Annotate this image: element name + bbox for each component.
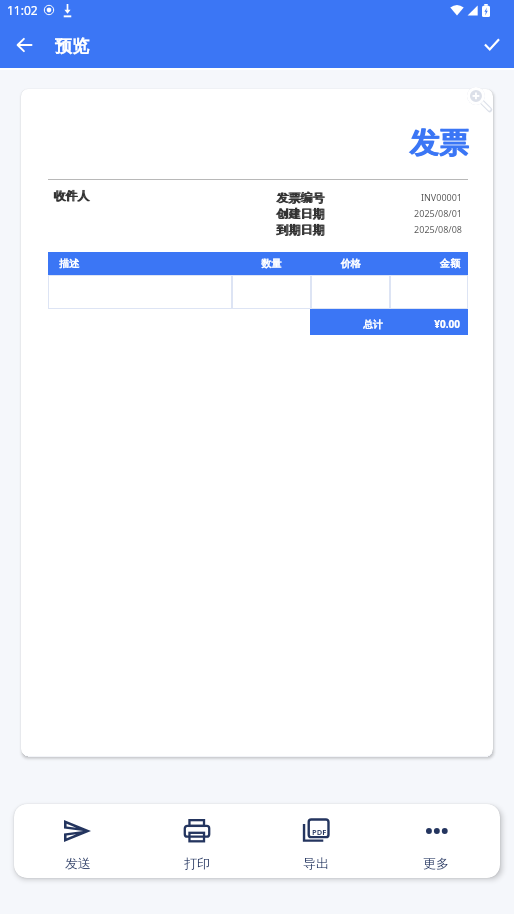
button[interactable]: 更多 — [376, 804, 496, 878]
button[interactable]: 打印 — [137, 804, 256, 878]
staticText: 金额 — [398, 257, 460, 270]
staticText: 发票编号 — [276, 190, 324, 205]
staticText: 总计 — [310, 318, 383, 331]
staticText: 创建日期 — [277, 206, 325, 221]
staticText: INV00001 — [324, 191, 462, 203]
staticText: 2025/08/08 — [324, 223, 462, 235]
staticText: 预览 — [55, 36, 89, 57]
staticText: 收件人 — [53, 188, 89, 203]
staticText: 到期日期 — [277, 222, 325, 237]
staticText: 发票 — [49, 125, 469, 162]
staticText: 描述 — [59, 257, 224, 270]
staticText: 导出 — [303, 855, 329, 871]
staticText: 创建日期 — [276, 206, 324, 221]
staticText: 11:02 — [7, 2, 38, 18]
button[interactable]: Back — [4, 25, 44, 65]
staticText: 发票编号 — [277, 190, 325, 205]
staticText: 收件人 — [54, 188, 90, 203]
staticText: PDF — [312, 827, 327, 837]
staticText: 数量 — [240, 257, 303, 270]
staticText: 发票 — [48, 125, 468, 162]
staticText: 打印 — [184, 855, 210, 871]
button[interactable]: Confirm — [472, 24, 512, 64]
staticText: ¥0.00 — [389, 317, 460, 331]
staticText: 到期日期 — [276, 222, 324, 237]
button[interactable]: Zoom in — [461, 81, 495, 115]
staticText: 发送 — [65, 855, 91, 871]
staticText: 更多 — [423, 855, 449, 871]
button[interactable]: 发送 — [18, 804, 137, 878]
button[interactable]: PDF — [256, 804, 376, 878]
staticText: 价格 — [319, 257, 382, 270]
staticText: 2025/08/01 — [324, 207, 462, 219]
